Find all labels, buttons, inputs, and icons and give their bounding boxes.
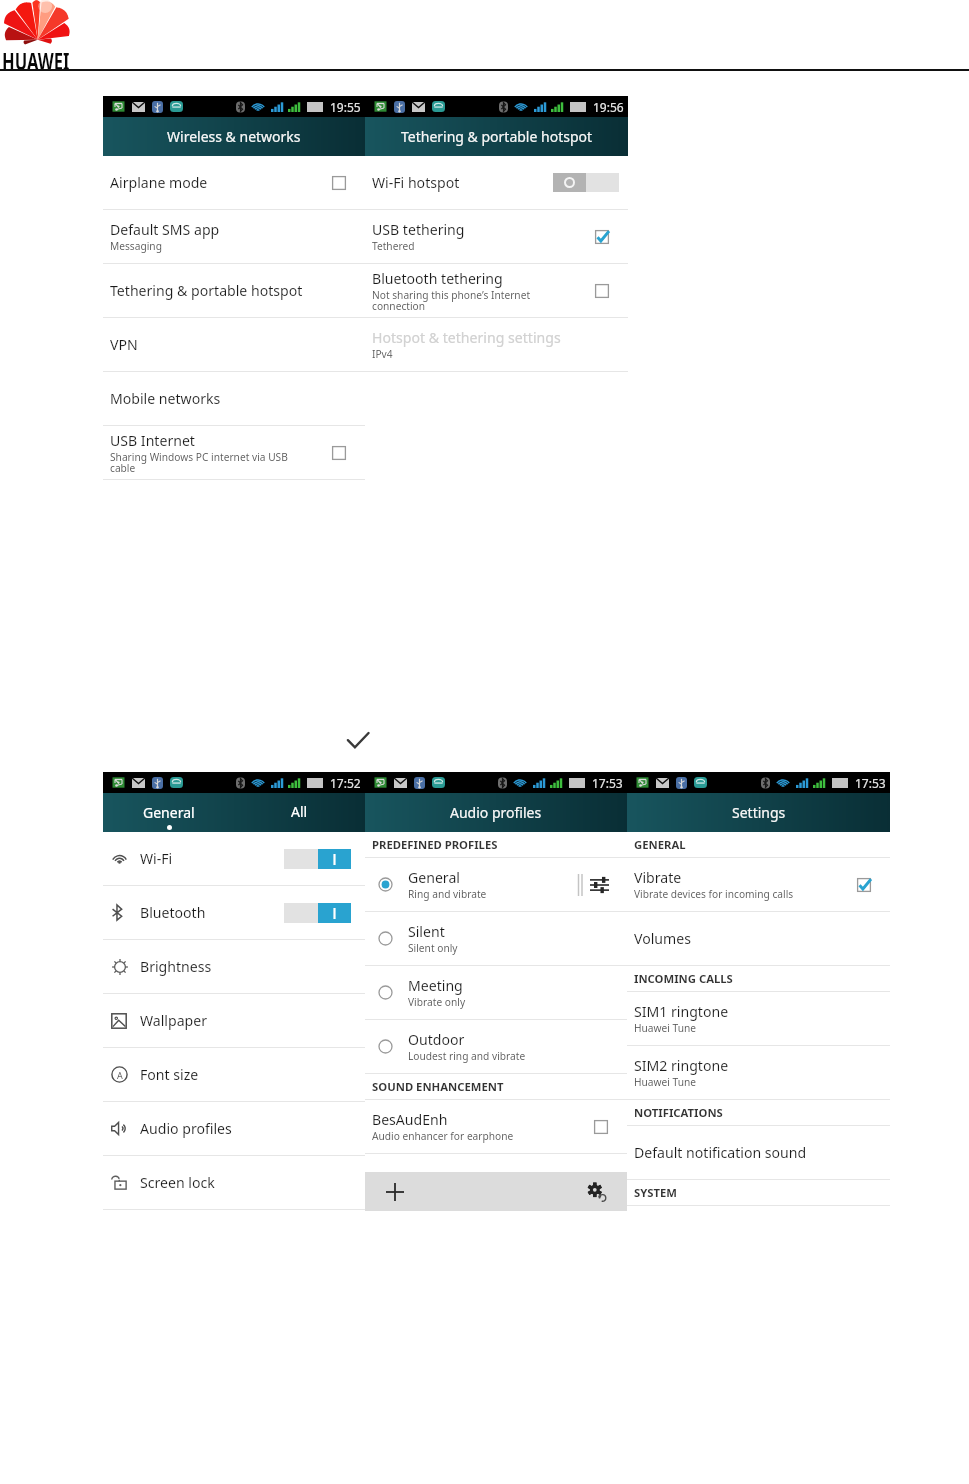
staticText: General [408,868,460,887]
button[interactable]: Select profile [378,931,393,946]
button[interactable]: Select profile [378,1039,393,1054]
staticText: Vibrate [634,868,682,887]
button[interactable]: USB Internet [103,426,365,480]
button[interactable]: USB tethering [365,210,628,264]
button[interactable]: General [103,793,234,832]
staticText: USB tethering [372,220,465,239]
staticText: Tethered [372,239,415,253]
button[interactable]: Select profile [378,877,393,892]
staticText: 17:53 [855,775,886,791]
staticText: 17:52 [330,775,361,791]
staticText: Outdoor [408,1030,465,1049]
button[interactable]: Wi-Fi [103,832,365,886]
button[interactable]: Checkbox [856,877,872,893]
button[interactable]: Bluetooth [103,886,365,940]
staticText: PREDEFINED PROFILES [372,837,498,852]
staticText: Tethering & portable hotspot [110,281,303,300]
staticText: SOUND ENHANCEMENT [372,1079,504,1094]
staticText: GENERAL [634,837,686,852]
staticText: A [117,1069,123,1081]
button[interactable]: VPN [103,318,365,372]
button[interactable]: SIM1 ringtone [627,992,890,1046]
staticText: Ring and vibrate [408,887,487,901]
button[interactable]: Checkbox [331,445,347,461]
button[interactable]: Checkbox [594,283,610,299]
button[interactable]: A [103,1048,365,1102]
staticText: Wallpaper [140,1011,208,1030]
button[interactable]: Select profile [378,985,393,1000]
staticText: General [143,803,195,822]
button[interactable]: Restore defaults [567,1172,627,1211]
staticText: Silent only [408,941,458,955]
staticText: Silent [408,922,445,941]
staticText: Mobile networks [110,389,221,408]
staticText: Tethering & portable hotspot [401,127,593,146]
button[interactable]: Hotspot & tethering settings [365,318,628,372]
staticText: Huawei Tune [634,1021,697,1035]
staticText: Airplane mode [110,173,208,192]
staticText: Vibrate devices for incoming calls [634,887,794,901]
staticText: Meeting [408,976,463,995]
button[interactable]: Select profile [365,1020,627,1074]
staticText: BesAudEnh [372,1110,448,1129]
staticText: Messaging [110,239,162,253]
button[interactable]: Audio profiles [103,1102,365,1156]
staticText: Bluetooth tethering [372,269,503,288]
staticText: 19:55 [330,99,361,115]
button[interactable]: Screen lock [103,1156,365,1210]
button[interactable]: Default SMS app [103,210,365,264]
button[interactable]: Add profile [365,1172,425,1211]
staticText: Settings [732,803,786,822]
staticText: Audio enhancer for earphone [372,1129,514,1143]
staticText: Screen lock [140,1173,215,1192]
staticText: Huawei Tune [634,1075,697,1089]
button[interactable]: Wallpaper [103,994,365,1048]
button[interactable]: Toggle on [284,903,351,923]
button[interactable]: Toggle on [284,849,351,869]
button[interactable]: Brightness [103,940,365,994]
staticText: Vibrate only [408,995,466,1009]
staticText: Hotspot & tethering settings [372,328,561,347]
button[interactable]: Checkbox [594,229,610,245]
staticText: All [291,802,308,821]
button[interactable]: Airplane mode [103,156,365,210]
staticText: SIM1 ringtone [634,1002,729,1021]
button[interactable]: Tethering & portable hotspot [103,264,365,318]
staticText: Wi-Fi [140,849,173,868]
staticText: Audio profiles [140,1119,232,1138]
button[interactable]: Toggle off [553,173,619,192]
staticText: Sharing Windows PC internet via USB cabl… [110,450,288,475]
staticText: SYSTEM [634,1185,678,1200]
staticText: NOTIFICATIONS [634,1105,723,1120]
staticText: Wi-Fi hotspot [372,173,460,192]
button[interactable]: Select profile [365,966,627,1020]
staticText: IPv4 [372,347,393,361]
staticText: Font size [140,1065,199,1084]
staticText: Wireless & networks [167,127,301,146]
staticText: Loudest ring and vibrate [408,1049,526,1063]
staticText: 19:56 [593,99,624,115]
button[interactable]: Default notification sound [627,1126,890,1180]
staticText: USB Internet [110,431,195,450]
staticText: 17:53 [592,775,623,791]
staticText: HUAWEI [2,45,70,76]
button[interactable]: Bluetooth tethering [365,264,628,318]
staticText: SIM2 ringtone [634,1056,729,1075]
staticText: INCOMING CALLS [634,971,733,986]
button[interactable]: Mobile networks [103,372,365,426]
button[interactable]: Volumes [627,912,890,966]
staticText: Bluetooth [140,903,206,922]
button[interactable]: SIM2 ringtone [627,1046,890,1100]
button[interactable]: Select profile [365,912,627,966]
staticText: Audio profiles [450,803,542,822]
staticText: VPN [110,335,138,354]
staticText: Default notification sound [634,1143,807,1162]
button[interactable]: BesAudEnh [365,1100,627,1154]
button[interactable]: Checkbox [593,1119,609,1135]
button[interactable]: Vibrate [627,858,890,912]
button[interactable]: Select profile [365,858,627,912]
button[interactable]: Wi-Fi hotspot [365,156,628,210]
staticText: Not sharing this phone’s Internet connec… [372,288,531,313]
button[interactable]: All [234,793,365,832]
button[interactable]: Checkbox [331,175,347,191]
